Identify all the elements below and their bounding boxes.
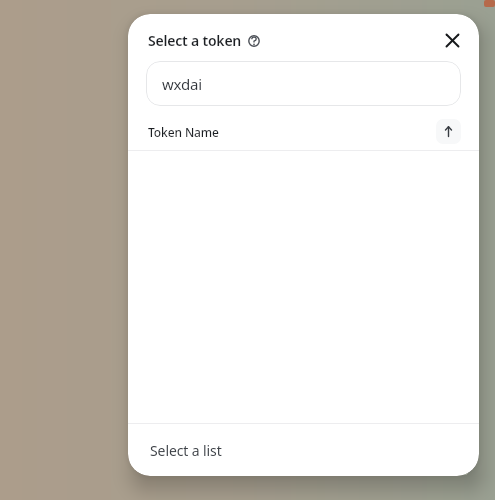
button[interactable]: Select a list [128, 424, 479, 476]
button[interactable] [436, 119, 461, 144]
button[interactable] [248, 35, 260, 47]
button[interactable] [444, 32, 461, 49]
staticText: Select a list [150, 441, 222, 460]
staticText: Select a token [148, 31, 242, 50]
staticText: wxdai [162, 74, 202, 94]
button[interactable]: wxdai [146, 61, 461, 106]
staticText: Token Name [148, 124, 219, 140]
